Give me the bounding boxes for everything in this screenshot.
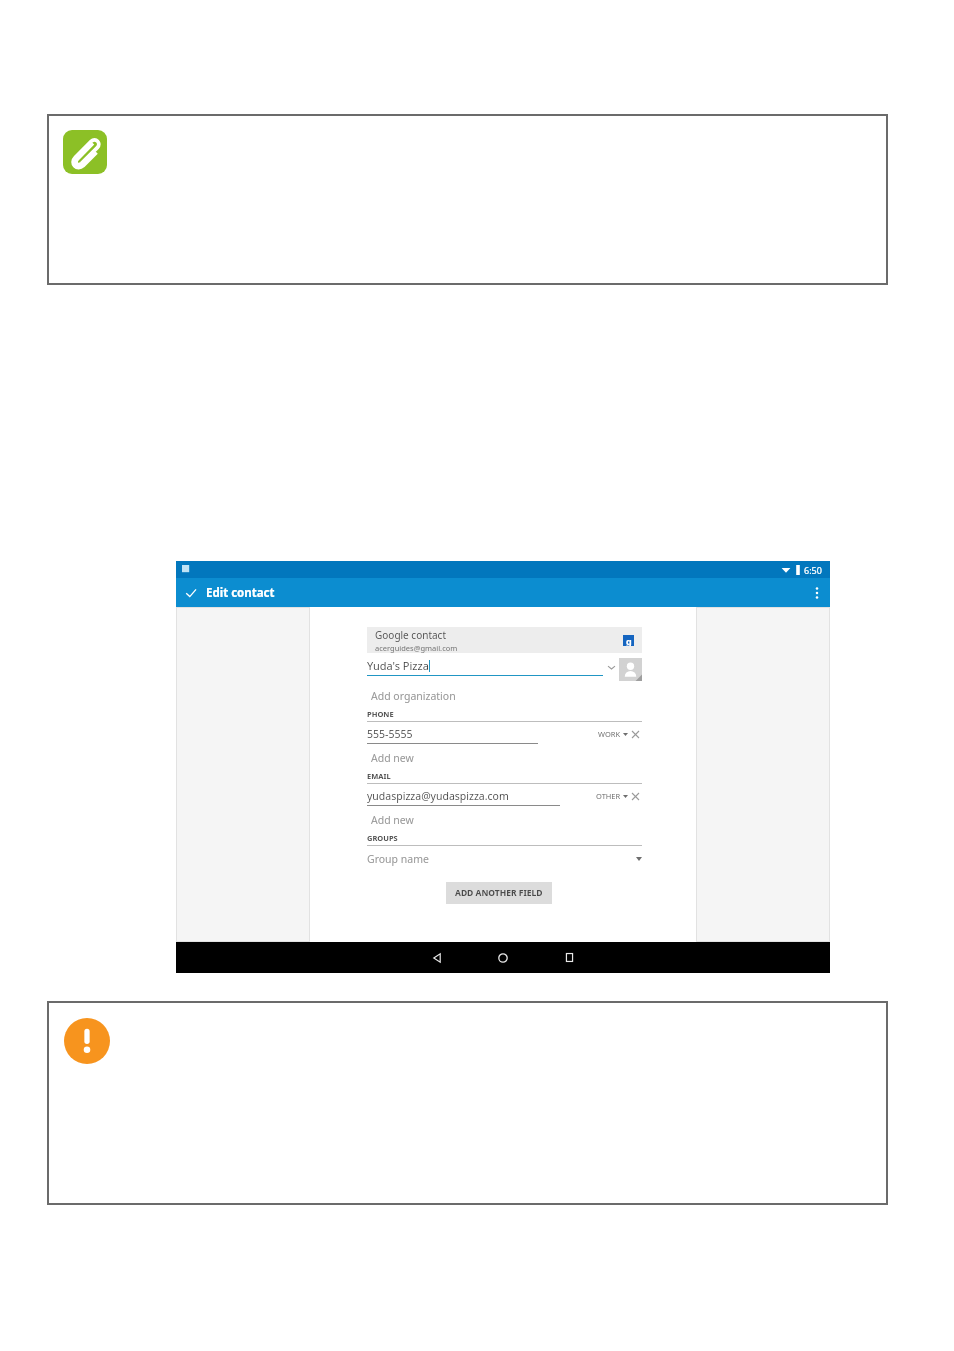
button[interactable]: Add new xyxy=(367,813,642,827)
button[interactable]: Done xyxy=(176,578,206,607)
staticText: Group name xyxy=(367,852,429,866)
staticText: WORK xyxy=(598,729,621,739)
staticText: Add new xyxy=(371,813,414,827)
staticText: acerguides@gmail.com xyxy=(375,643,458,653)
button[interactable]: Contact photo xyxy=(619,658,642,681)
staticText: Google contact xyxy=(375,628,447,642)
button[interactable]: OTHER xyxy=(596,791,628,801)
staticText: yudaspizza@yudaspizza.com xyxy=(367,789,509,803)
button[interactable]: Group name xyxy=(367,852,642,866)
staticText: Edit contact xyxy=(206,585,275,601)
staticText: PHONE xyxy=(367,709,394,719)
staticText: EMAIL xyxy=(367,771,391,781)
button[interactable]: Google contact xyxy=(367,627,642,653)
staticText: g xyxy=(626,635,632,646)
staticText: GROUPS xyxy=(367,833,398,843)
staticText: ADD ANOTHER FIELD xyxy=(455,887,543,899)
button[interactable]: WORK xyxy=(598,729,628,739)
staticText: 6:50 xyxy=(804,564,822,576)
button[interactable]: 555-5555 xyxy=(367,727,598,741)
button[interactable]: ADD ANOTHER FIELD xyxy=(446,882,552,904)
button[interactable]: yudaspizza@yudaspizza.com xyxy=(367,789,596,803)
staticText: Add organization xyxy=(371,689,456,703)
button[interactable]: Home xyxy=(470,942,536,973)
staticText: Add new xyxy=(371,751,414,765)
button[interactable]: Done xyxy=(176,578,830,607)
button[interactable]: Recent apps xyxy=(536,942,602,973)
button[interactable]: More options xyxy=(804,578,830,607)
button[interactable]: Expand name xyxy=(603,658,619,676)
button[interactable]: Remove WORK field xyxy=(628,728,642,740)
button[interactable]: Back xyxy=(404,942,470,973)
button[interactable]: Add organization xyxy=(367,689,642,703)
staticText: 555-5555 xyxy=(367,727,413,741)
button[interactable]: Remove OTHER field xyxy=(628,790,642,802)
staticText: OTHER xyxy=(596,791,621,801)
button[interactable]: Add new xyxy=(367,751,642,765)
staticText: Yuda's Pizza xyxy=(367,658,429,673)
